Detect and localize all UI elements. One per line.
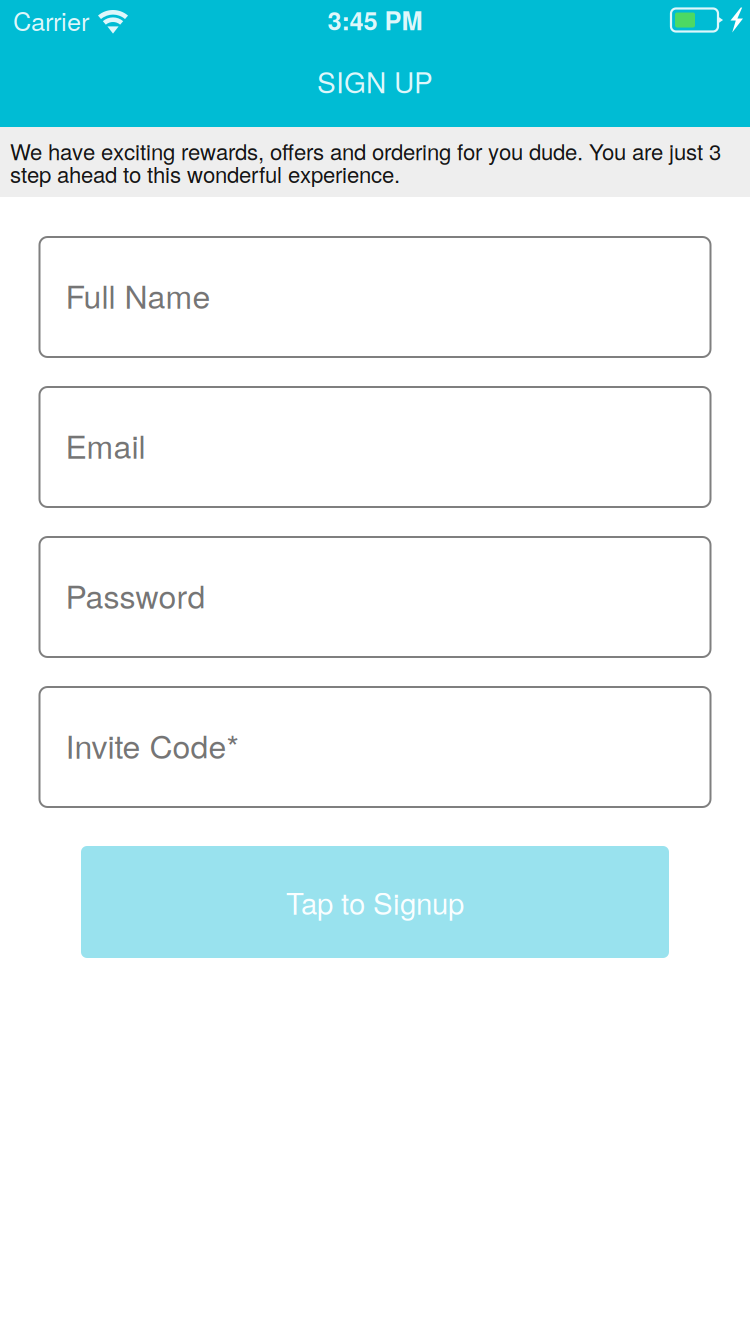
staticText: Carrier (13, 2, 89, 38)
staticText: We have exciting rewards, offers and ord… (10, 139, 721, 185)
staticText: Password (65, 572, 205, 618)
button[interactable]: Tap to Signup (81, 846, 669, 958)
staticText: Tap to Signup (286, 881, 464, 923)
button[interactable]: Full Name (39, 237, 710, 357)
staticText: Email (65, 422, 145, 468)
staticText: Invite Code* (65, 722, 238, 768)
staticText: 3:45 PM (327, 2, 422, 38)
staticText: SIGN UP (317, 61, 433, 101)
staticText: Full Name (65, 272, 210, 318)
button[interactable]: Email (39, 387, 710, 507)
button[interactable]: Password (39, 537, 710, 657)
button[interactable]: Invite Code* (39, 687, 710, 807)
